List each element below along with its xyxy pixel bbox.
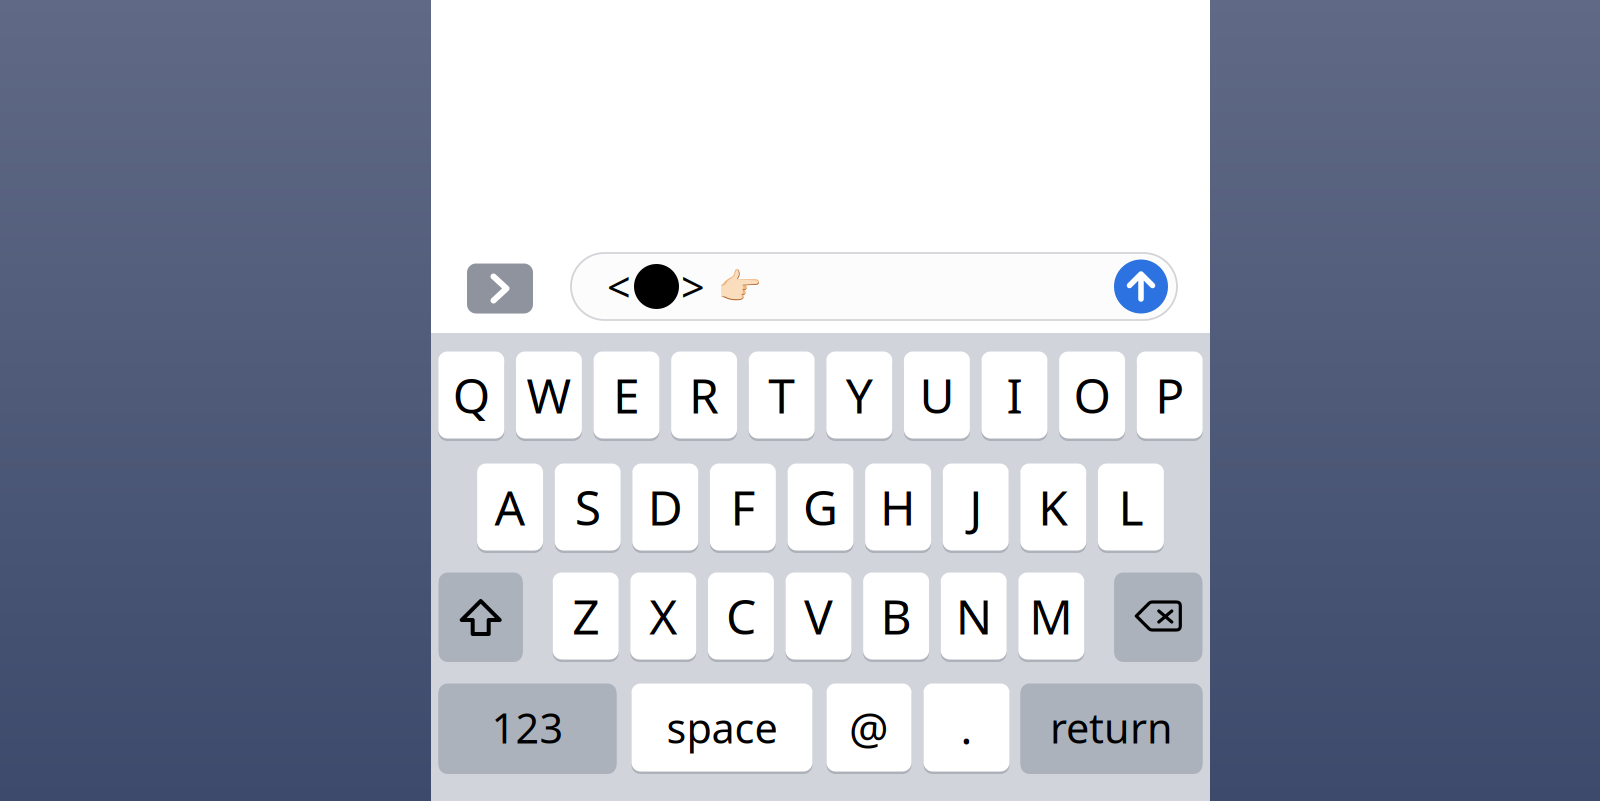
staticText: return bbox=[1050, 700, 1173, 755]
button[interactable]: B bbox=[863, 571, 929, 661]
button[interactable]: L bbox=[1098, 462, 1164, 552]
staticText: < bbox=[607, 259, 631, 314]
staticText: Y bbox=[846, 363, 873, 427]
staticText: Z bbox=[572, 584, 599, 648]
button[interactable]: More options bbox=[467, 261, 533, 311]
button[interactable]: M bbox=[1018, 571, 1084, 661]
staticText: D bbox=[648, 475, 683, 539]
staticText: C bbox=[726, 584, 756, 648]
button[interactable]: Y bbox=[826, 350, 892, 440]
staticText: space bbox=[666, 700, 777, 755]
staticText: G bbox=[803, 475, 838, 539]
staticText: 123 bbox=[491, 700, 563, 755]
staticText: J bbox=[969, 475, 982, 539]
staticText: M bbox=[1029, 584, 1073, 648]
staticText: N bbox=[956, 584, 992, 648]
staticText: . bbox=[960, 698, 972, 757]
staticText: U bbox=[919, 363, 954, 427]
button[interactable]: Z bbox=[553, 571, 619, 661]
button[interactable]: C bbox=[708, 571, 774, 661]
button[interactable]: N bbox=[941, 571, 1007, 661]
staticText: O bbox=[1074, 363, 1111, 427]
staticText: E bbox=[613, 363, 640, 427]
staticText: W bbox=[526, 363, 571, 427]
staticText: @ bbox=[849, 698, 889, 757]
button[interactable]: Send bbox=[1114, 259, 1168, 313]
button[interactable]: A bbox=[477, 462, 543, 552]
button[interactable]: space bbox=[631, 682, 812, 773]
button[interactable]: G bbox=[787, 462, 853, 552]
staticText: H bbox=[880, 475, 916, 539]
button[interactable]: T bbox=[749, 350, 815, 440]
staticText: K bbox=[1038, 475, 1068, 539]
staticText: X bbox=[649, 584, 677, 648]
staticText: > bbox=[681, 259, 705, 314]
button[interactable]: E bbox=[593, 350, 659, 440]
button[interactable]: D bbox=[632, 462, 698, 552]
button[interactable]: I bbox=[981, 350, 1047, 440]
button[interactable]: W bbox=[516, 350, 582, 440]
button[interactable]: U bbox=[904, 350, 970, 440]
button[interactable]: O bbox=[1059, 350, 1125, 440]
staticText: S bbox=[575, 475, 601, 539]
button[interactable]: V bbox=[785, 571, 851, 661]
staticText: F bbox=[730, 475, 755, 539]
button[interactable]: Q bbox=[438, 350, 504, 440]
button[interactable]: X bbox=[630, 571, 696, 661]
button[interactable]: 123 bbox=[438, 682, 616, 773]
staticText: T bbox=[768, 363, 795, 427]
button[interactable]: H bbox=[865, 462, 931, 552]
button[interactable]: P bbox=[1137, 350, 1203, 440]
staticText: I bbox=[1006, 363, 1022, 427]
staticText: R bbox=[689, 363, 719, 427]
staticText: V bbox=[804, 584, 833, 648]
button[interactable]: S bbox=[555, 462, 621, 552]
staticText: Q bbox=[453, 363, 490, 427]
button[interactable]: R bbox=[671, 350, 737, 440]
button[interactable]: Delete bbox=[1114, 571, 1202, 661]
staticText: A bbox=[495, 475, 526, 539]
button[interactable]: Shift bbox=[439, 571, 523, 661]
button[interactable]: @ bbox=[826, 682, 911, 773]
staticText: L bbox=[1118, 475, 1143, 539]
button[interactable]: F bbox=[710, 462, 776, 552]
staticText: B bbox=[881, 584, 912, 648]
button[interactable]: . bbox=[923, 682, 1009, 773]
button[interactable]: return bbox=[1020, 682, 1202, 773]
button[interactable]: J bbox=[943, 462, 1009, 552]
staticText: 👉🏻 bbox=[717, 266, 762, 307]
staticText: P bbox=[1155, 363, 1184, 427]
button[interactable]: K bbox=[1020, 462, 1086, 552]
